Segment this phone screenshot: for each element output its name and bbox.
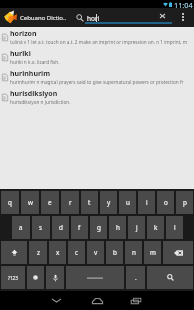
staticText: 11:04 bbox=[174, 0, 193, 8]
staticText: r bbox=[69, 198, 72, 207]
button[interactable]: f bbox=[71, 216, 88, 239]
button[interactable]: g bbox=[90, 216, 107, 239]
staticText: hurinhurim bbox=[10, 69, 51, 79]
button[interactable]: k bbox=[147, 216, 164, 239]
button[interactable]: y bbox=[100, 191, 117, 214]
button[interactable]: t bbox=[81, 191, 98, 214]
staticText: Cebuano Dictio.. bbox=[20, 14, 67, 22]
staticText: ?123 bbox=[8, 275, 18, 281]
staticText: w bbox=[28, 198, 33, 207]
button[interactable]: q bbox=[1, 191, 19, 214]
button[interactable]: Emoji bbox=[27, 266, 44, 289]
button[interactable]: c bbox=[68, 241, 85, 264]
button[interactable]: l bbox=[166, 216, 183, 239]
button[interactable]: Recent apps bbox=[117, 291, 155, 310]
button[interactable]: Clear query bbox=[155, 8, 170, 24]
staticText: f bbox=[78, 223, 81, 232]
button[interactable]: Voice input bbox=[46, 266, 64, 289]
button[interactable]: m bbox=[144, 241, 161, 264]
button[interactable]: a bbox=[12, 216, 30, 239]
staticText: i bbox=[146, 198, 148, 207]
staticText: hurisdiksiyon n jurisdiction. bbox=[10, 99, 71, 105]
button[interactable]: s bbox=[32, 216, 50, 239]
button[interactable]: Hide keyboard bbox=[37, 291, 75, 310]
staticText: z bbox=[37, 248, 40, 257]
staticText: v bbox=[94, 248, 98, 257]
button[interactable]: Cebuano Dictio.. bbox=[0, 8, 69, 27]
button[interactable]: n bbox=[125, 241, 142, 264]
staticText: c bbox=[75, 248, 79, 257]
staticText: hurĭki bbox=[10, 49, 31, 59]
button[interactable]: Shift bbox=[1, 241, 27, 264]
staticText: . bbox=[135, 273, 137, 282]
staticText: g bbox=[97, 223, 101, 232]
button[interactable]: p bbox=[176, 191, 193, 214]
button[interactable]: z bbox=[29, 241, 47, 264]
staticText: q bbox=[8, 198, 12, 207]
staticText: hori bbox=[87, 14, 100, 23]
button[interactable]: d bbox=[52, 216, 69, 239]
button[interactable]: hurinhurim bbox=[0, 67, 194, 87]
staticText: huriki n k.o. lizard fish. bbox=[10, 59, 60, 65]
staticText: j bbox=[136, 223, 138, 232]
button[interactable]: Home bbox=[78, 291, 116, 310]
button[interactable]: j bbox=[128, 216, 145, 239]
button[interactable]: Space bbox=[66, 266, 124, 289]
staticText: u bbox=[126, 198, 130, 207]
staticText: s bbox=[39, 223, 43, 232]
staticText: h bbox=[116, 223, 120, 232]
staticText: k bbox=[154, 223, 158, 232]
button[interactable]: i bbox=[138, 191, 155, 214]
button[interactable]: Search bbox=[147, 266, 193, 289]
button[interactable]: v bbox=[87, 241, 104, 264]
button[interactable]: hurĭki bbox=[0, 47, 194, 67]
button[interactable]: . bbox=[126, 266, 145, 289]
button[interactable]: hurisdiksiyon bbox=[0, 87, 194, 107]
staticText: p bbox=[183, 198, 187, 207]
staticText: n bbox=[132, 248, 136, 257]
button[interactable]: h bbox=[109, 216, 126, 239]
button[interactable]: Search bbox=[73, 8, 86, 27]
staticText: t bbox=[88, 198, 91, 207]
button[interactable]: x bbox=[49, 241, 66, 264]
button[interactable]: r bbox=[61, 191, 79, 214]
staticText: o bbox=[164, 198, 168, 207]
staticText: e bbox=[48, 198, 52, 207]
staticText: l bbox=[174, 223, 176, 232]
button[interactable]: Delete bbox=[163, 241, 193, 264]
button[interactable]: ?123 bbox=[1, 266, 25, 289]
button[interactable]: b bbox=[106, 241, 123, 264]
staticText: d bbox=[59, 223, 63, 232]
staticText: hurisdiksiyon bbox=[10, 89, 58, 99]
button[interactable]: horizon bbox=[0, 27, 194, 47]
staticText: y bbox=[107, 198, 111, 207]
button[interactable]: e bbox=[41, 191, 59, 214]
staticText: m bbox=[150, 248, 156, 257]
staticText: hurinhurim n magical prayers said to giv… bbox=[10, 79, 184, 85]
button[interactable]: More options bbox=[175, 8, 190, 25]
staticText: tulinà v 1 let a.t. touch on a.t. 2 make… bbox=[10, 39, 188, 45]
button[interactable]: w bbox=[21, 191, 39, 214]
staticText: a bbox=[19, 223, 23, 232]
staticText: b bbox=[113, 248, 117, 257]
staticText: x bbox=[56, 248, 60, 257]
button[interactable]: o bbox=[157, 191, 174, 214]
button[interactable]: u bbox=[119, 191, 136, 214]
staticText: horizon bbox=[10, 29, 37, 39]
